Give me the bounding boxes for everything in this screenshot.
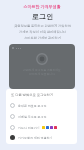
button[interactable]: 카드사 바로가기 <box>10 123 73 132</box>
staticText: 카카오뱅크 계좌 연결하기 <box>18 136 53 140</box>
staticText: 로그인 <box>32 12 53 21</box>
staticText: 카드사 바로가기 <box>18 126 40 130</box>
button[interactable]: Play <box>36 53 48 65</box>
staticText: 이메일 주소로 로그인 <box>18 115 47 119</box>
button[interactable]: 카카오뱅크 계좌 연결하기 <box>10 133 73 142</box>
staticText: 간편하게 로그인을 진행하세요 안전하게 보호됩니다 <box>23 68 61 76</box>
staticText: 금융정보를 동의하고 간편하게 가입하면 가계부 작성이 더욱 편리해집니다 스… <box>14 24 71 40</box>
button[interactable]: 휴대폰 번호로 로그인 <box>10 101 73 110</box>
staticText: 스마트한 가계부생활 <box>23 4 61 9</box>
staticText: 휴대폰 번호로 로그인 <box>18 104 47 108</box>
staticText: 또 다른 방법으로 로그인하기 <box>11 92 54 97</box>
button[interactable]: 이메일 주소로 로그인 <box>10 112 73 121</box>
